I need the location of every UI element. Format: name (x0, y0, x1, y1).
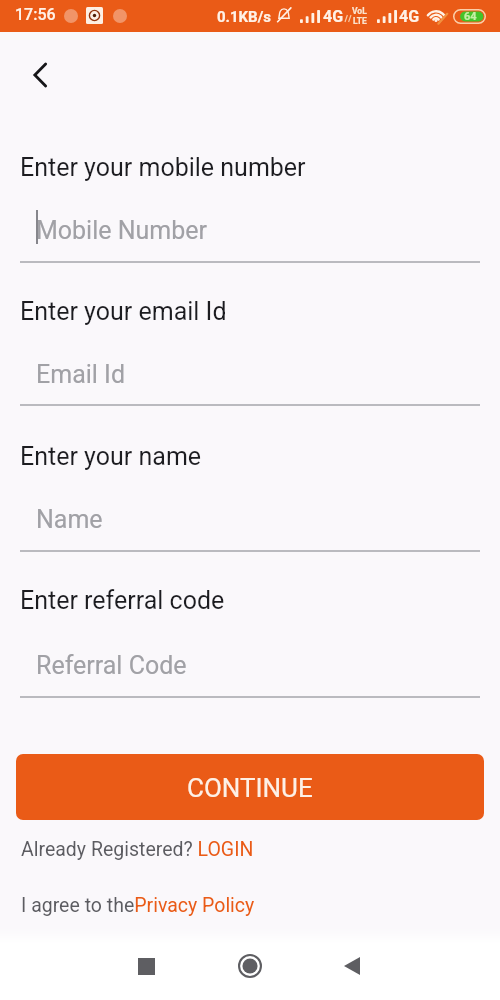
staticText: 0.1KB/s (217, 8, 271, 26)
staticText: 4G (399, 7, 420, 26)
staticText: 64 (464, 10, 477, 23)
staticText: Already Registered? LOGIN (21, 838, 254, 861)
staticText: I agree to thePrivacy Policy (21, 894, 255, 917)
staticText: CONTINUE (187, 773, 313, 803)
staticText: Enter your name (20, 442, 202, 471)
staticText: Email Id (36, 360, 125, 389)
button[interactable] (20, 351, 480, 405)
staticText: VoL (352, 6, 367, 16)
staticText: 17:56 (15, 5, 56, 24)
button[interactable] (20, 497, 480, 551)
button[interactable]: Back (328, 942, 376, 990)
staticText: LTE (353, 16, 367, 26)
button[interactable]: Back (17, 51, 65, 99)
button[interactable]: Privacy Policy (133, 891, 259, 919)
staticText: Name (36, 505, 103, 534)
button[interactable] (20, 643, 480, 697)
staticText: Enter your email Id (20, 297, 227, 326)
button[interactable]: LOGIN (192, 835, 258, 863)
staticText: Enter referral code (20, 586, 225, 615)
staticText: Referral Code (36, 651, 187, 680)
button[interactable]: Recent apps (122, 942, 170, 990)
staticText: 4G (323, 7, 344, 26)
button[interactable]: CONTINUE (16, 754, 484, 820)
staticText: Mobile Number (36, 216, 208, 245)
button[interactable] (20, 208, 480, 262)
staticText: Enter your mobile number (20, 153, 306, 182)
button[interactable]: Home (226, 942, 274, 990)
